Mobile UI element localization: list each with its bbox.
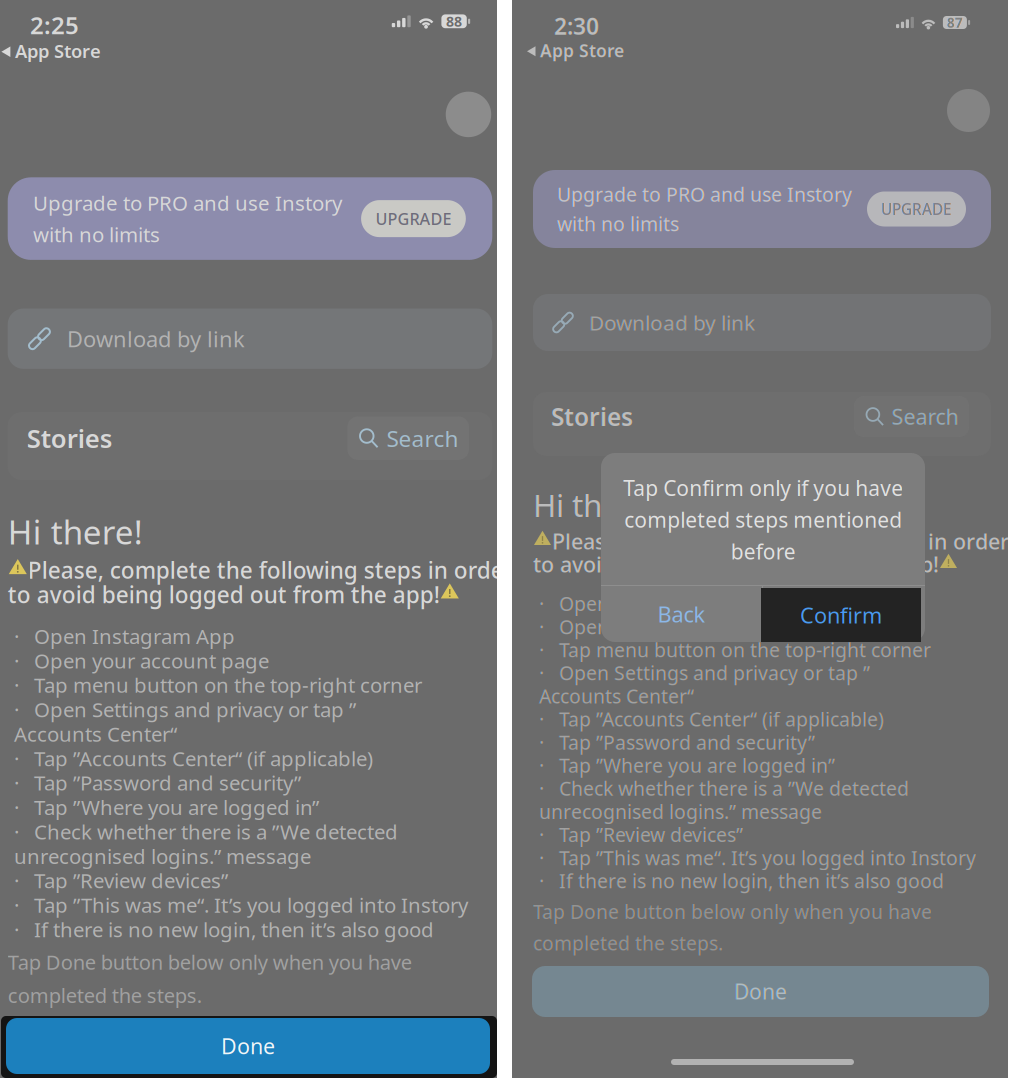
- staticText: · Tap ”Where you are logged in”: [539, 752, 835, 778]
- button[interactable]: Back to App Store: [1, 39, 101, 63]
- staticText: · Tap ”Review devices”: [14, 867, 228, 894]
- staticText: Done: [221, 1032, 275, 1060]
- button[interactable]: Profile: [947, 89, 990, 132]
- staticText: unrecognised logins.” message: [14, 842, 311, 870]
- staticText: Upgrade to PRO and use Instory with no l…: [557, 181, 852, 237]
- button[interactable]: Search: [854, 396, 969, 437]
- staticText: Upgrade to PRO and use Instory with no l…: [33, 189, 342, 248]
- staticText: Hi there!: [533, 484, 658, 526]
- staticText: Please, complete the following steps in …: [552, 527, 1009, 555]
- staticText: UPGRADE: [375, 208, 451, 229]
- staticText: · Check whether there is a ”We detected: [14, 818, 398, 845]
- staticText: Confirm: [803, 600, 885, 628]
- button[interactable]: Done: [1, 1016, 497, 1078]
- staticText: · Open Settings and privacy or tap ”: [14, 696, 356, 723]
- staticText: · Check whether there is a ”We detected: [539, 776, 909, 801]
- staticText: · Tap ”Password and security”: [539, 729, 815, 755]
- button[interactable]: Back to App Store: [527, 39, 624, 62]
- button[interactable]: Upgrade to PRO and use Instory with no l…: [533, 170, 991, 248]
- staticText: · Tap menu button on the top-right corne…: [539, 637, 931, 663]
- button[interactable]: Confirm: [763, 586, 925, 642]
- staticText: 2:25: [30, 9, 79, 41]
- staticText: · Tap ”Password and security”: [14, 769, 301, 796]
- staticText: Stories: [551, 400, 633, 433]
- staticText: Search: [891, 402, 958, 431]
- staticText: Confirm: [800, 601, 882, 629]
- staticText: · Tap ”Where you are logged in”: [14, 794, 319, 821]
- staticText: Download by link: [67, 324, 245, 353]
- button[interactable]: Done: [532, 966, 989, 1017]
- staticText: · Tap menu button on the top-right corne…: [14, 671, 422, 698]
- staticText: · Open Instagram App: [14, 622, 235, 650]
- staticText: Accounts Center“: [14, 720, 177, 747]
- staticText: Download by link: [589, 309, 755, 336]
- button[interactable]: Confirm: [761, 588, 921, 642]
- button[interactable]: Download by link: [8, 309, 492, 369]
- staticText: Tap Done button below only when you have…: [533, 899, 932, 956]
- staticText: · Tap ”Accounts Center“ (if applicable): [14, 745, 373, 772]
- staticText: 87: [947, 14, 963, 31]
- staticText: Tap Confirm only if you have completed s…: [623, 474, 903, 565]
- staticText: · Tap ”Review devices”: [539, 822, 743, 847]
- staticText: 88: [446, 12, 462, 31]
- staticText: · Open Instagram App: [539, 591, 750, 616]
- staticText: · Open your account page: [539, 614, 784, 639]
- staticText: unrecognised logins.” message: [539, 799, 822, 824]
- staticText: Search: [386, 423, 458, 453]
- staticText: Stories: [27, 421, 113, 455]
- button[interactable]: Download by link: [533, 294, 991, 351]
- staticText: Back: [657, 600, 705, 628]
- staticText: · Open Settings and privacy or tap ”: [539, 660, 870, 686]
- staticText: · Open your account page: [14, 647, 269, 674]
- button[interactable]: Upgrade to PRO and use Instory with no l…: [8, 177, 492, 260]
- staticText: App Store: [540, 39, 624, 62]
- staticText: · Tap ”Accounts Center“ (if applicable): [539, 706, 884, 732]
- staticText: App Store: [15, 39, 101, 63]
- staticText: Please, complete the following steps in …: [28, 555, 514, 585]
- button[interactable]: Back: [601, 586, 762, 642]
- staticText: Done: [734, 978, 787, 1005]
- staticText: · Tap ”This was me“. It’s you logged int…: [539, 845, 976, 870]
- staticText: Tap Done button below only when you have…: [8, 949, 412, 1008]
- button[interactable]: Profile: [446, 92, 491, 137]
- staticText: to avoid being logged out from the app!: [8, 579, 440, 609]
- staticText: UPGRADE: [881, 199, 952, 219]
- staticText: Hi there!: [8, 510, 143, 554]
- button[interactable]: Search: [347, 416, 469, 460]
- staticText: · If there is no new login, then it’s al…: [539, 868, 944, 894]
- staticText: · Tap ”This was me“. It’s you logged int…: [14, 891, 468, 918]
- staticText: · If there is no new login, then it’s al…: [14, 916, 434, 943]
- staticText: to avoid being logged out from the app!: [533, 550, 939, 578]
- staticText: Accounts Center“: [539, 683, 694, 709]
- staticText: 2:30: [554, 11, 599, 41]
